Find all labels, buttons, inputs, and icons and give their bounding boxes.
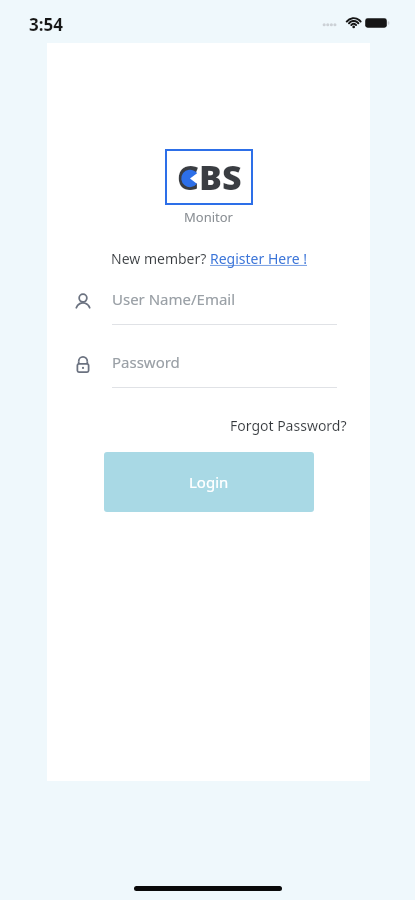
staticText: 3:54 — [29, 13, 63, 36]
other: User name — [72, 291, 94, 313]
button[interactable]: Login — [104, 452, 314, 512]
button[interactable]: Password — [72, 352, 337, 388]
staticText: Login — [189, 472, 229, 492]
staticText: Monitor — [184, 208, 233, 226]
staticText: Password — [112, 352, 180, 372]
staticText: Register Here ! — [210, 249, 307, 268]
staticText: New member? — [111, 249, 210, 268]
staticText: User Name/Email — [112, 289, 236, 309]
staticText: CBS — [177, 154, 242, 200]
button[interactable]: User name — [72, 289, 337, 325]
button[interactable]: Forgot Password? — [226, 412, 351, 439]
staticText: Forgot Password? — [230, 416, 347, 435]
button[interactable]: Register Here ! — [210, 249, 307, 268]
other: Password — [72, 354, 94, 376]
